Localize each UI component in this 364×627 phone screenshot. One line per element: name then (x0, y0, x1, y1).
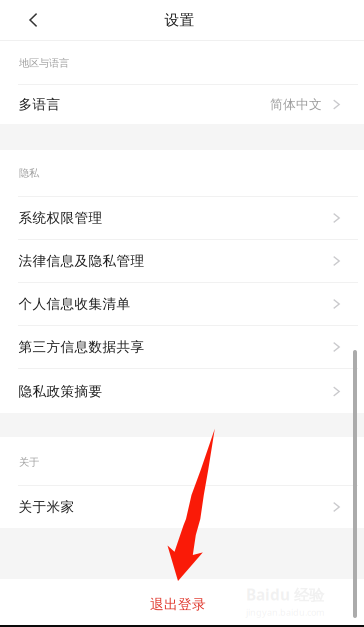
button[interactable]: 关于米家 (0, 486, 364, 528)
staticText: 隐私政策摘要 (18, 383, 102, 400)
button[interactable]: 个人信息收集清单 (0, 283, 364, 325)
staticText: 关于 (19, 455, 39, 468)
staticText: 简体中文 (270, 96, 322, 112)
button[interactable]: 退出登录 (0, 579, 364, 625)
staticText: 系统权限管理 (18, 209, 102, 226)
button[interactable]: 第三方信息数据共享 (0, 326, 364, 368)
staticText: 设置 (164, 11, 194, 29)
staticText: 第三方信息数据共享 (18, 338, 144, 355)
staticText: 法律信息及隐私管理 (18, 252, 144, 269)
staticText: 个人信息收集清单 (18, 295, 130, 312)
staticText: 退出登录 (150, 596, 206, 613)
staticText: 关于米家 (18, 498, 74, 515)
staticText: jingyan.baidu.com (246, 606, 324, 618)
button[interactable]: Back (0, 0, 56, 40)
staticText: Baidu 经验 (246, 584, 324, 605)
button[interactable]: 系统权限管理 (0, 197, 364, 239)
staticText: 多语言 (18, 96, 60, 113)
button[interactable]: 多语言 (0, 85, 364, 124)
staticText: 隐私 (19, 166, 39, 179)
button[interactable]: 隐私政策摘要 (0, 369, 364, 413)
staticText: 地区与语言 (19, 56, 69, 69)
button[interactable]: 法律信息及隐私管理 (0, 240, 364, 282)
